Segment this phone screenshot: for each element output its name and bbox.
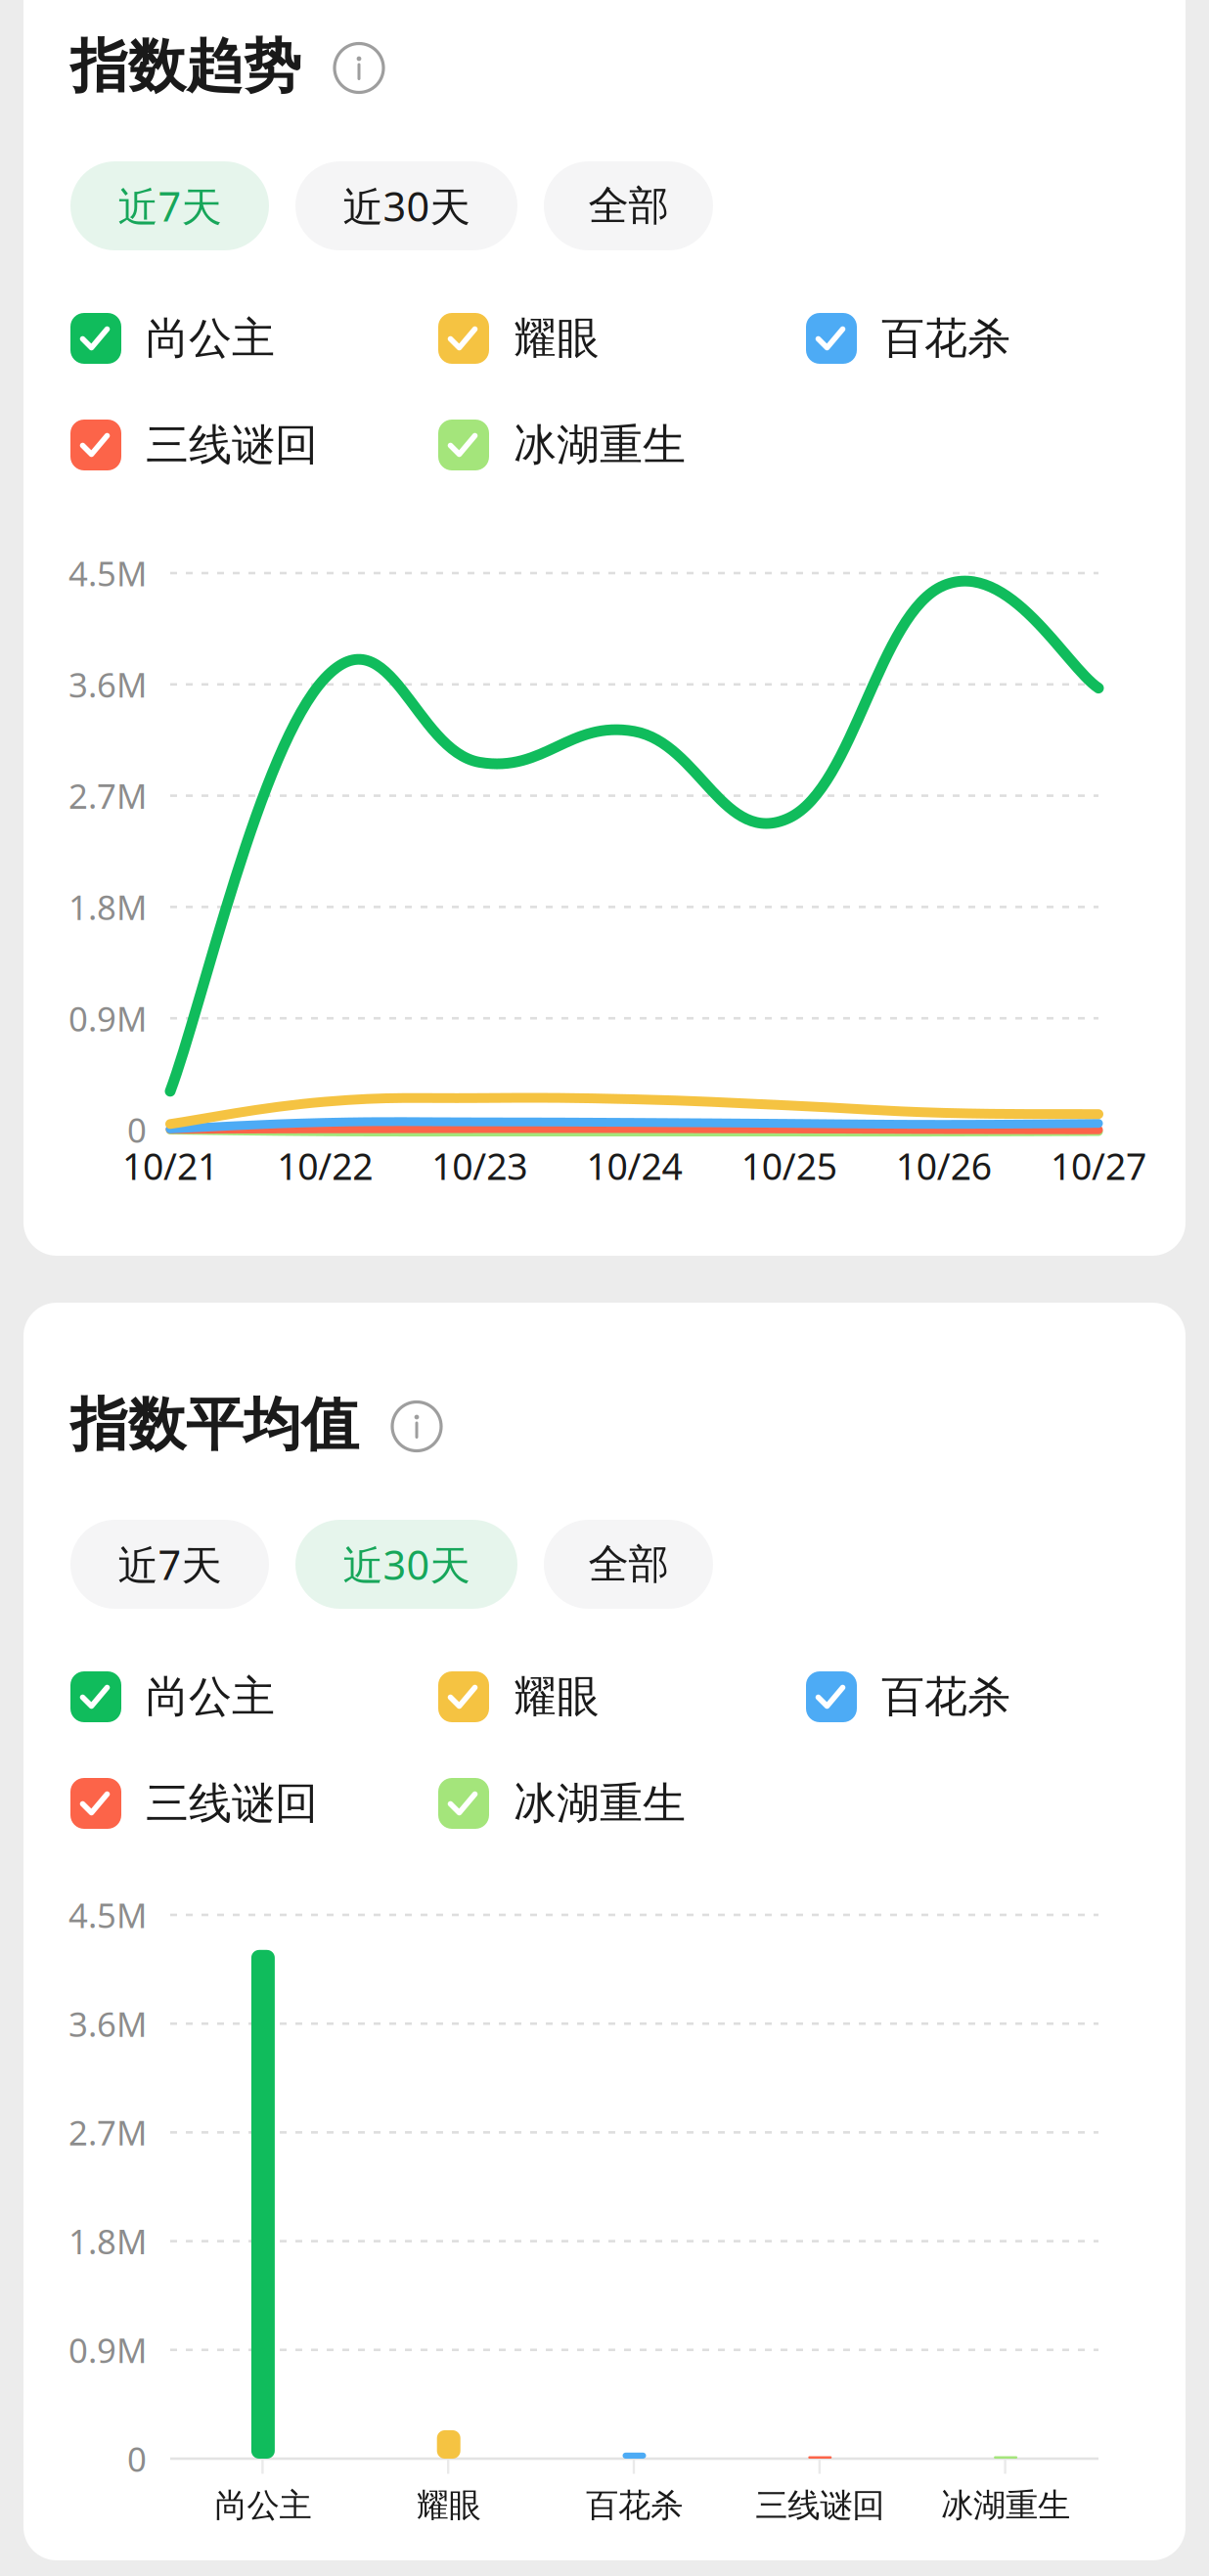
button[interactable]: 冰湖重生 — [438, 420, 806, 470]
staticText: 10/21 — [122, 1141, 218, 1190]
staticText: 三线谜回 — [146, 419, 318, 471]
button[interactable]: 近7天 — [70, 161, 269, 250]
staticText: 全部 — [588, 181, 669, 231]
button[interactable]: 全部 — [544, 161, 713, 250]
button[interactable]: 百花杀 — [806, 313, 1174, 364]
staticText: 0 — [127, 2436, 147, 2481]
staticText: 10/22 — [277, 1141, 373, 1190]
staticText: 三线谜回 — [146, 1777, 318, 1830]
button[interactable]: 近30天 — [295, 161, 517, 250]
staticText: 近30天 — [343, 1537, 470, 1591]
staticText: 4.5M — [68, 1892, 147, 1937]
staticText: 10/23 — [432, 1141, 528, 1190]
button[interactable]: 近30天 — [295, 1520, 517, 1609]
staticText: 近30天 — [343, 179, 470, 233]
staticText: 三线谜回 — [755, 2486, 885, 2526]
staticText: 百花杀 — [881, 312, 1010, 365]
button[interactable]: 三线谜回 — [70, 1778, 438, 1829]
staticText: 百花杀 — [881, 1670, 1010, 1723]
staticText: 百花杀 — [586, 2486, 683, 2526]
staticText: 冰湖重生 — [514, 1777, 686, 1830]
staticText: 0.9M — [68, 996, 147, 1041]
staticText: 指数趋势 — [70, 31, 301, 102]
staticText: 10/24 — [586, 1141, 682, 1190]
button[interactable]: 尚公主 — [70, 313, 438, 364]
staticText: 2.7M — [68, 773, 147, 818]
staticText: 1.8M — [68, 884, 147, 929]
staticText: 10/26 — [896, 1141, 992, 1190]
staticText: 近7天 — [118, 1537, 222, 1591]
button[interactable]: 三线谜回 — [70, 420, 438, 470]
button[interactable]: 耀眼 — [438, 1671, 806, 1722]
staticText: 0 — [127, 1107, 147, 1152]
staticText: 冰湖重生 — [514, 419, 686, 471]
staticText: 尚公主 — [146, 312, 275, 365]
button[interactable]: 近7天 — [70, 1520, 269, 1609]
staticText: 10/27 — [1051, 1141, 1146, 1190]
staticText: 耀眼 — [416, 2486, 481, 2526]
staticText: 2.7M — [68, 2110, 147, 2155]
staticText: 近7天 — [118, 179, 222, 233]
staticText: 3.6M — [68, 662, 147, 707]
staticText: 耀眼 — [514, 312, 600, 365]
button[interactable]: 尚公主 — [70, 1671, 438, 1722]
staticText: 耀眼 — [514, 1670, 600, 1723]
staticText: 4.5M — [68, 551, 147, 596]
staticText: 冰湖重生 — [941, 2486, 1070, 2526]
staticText: 尚公主 — [146, 1670, 275, 1723]
staticText: 0.9M — [68, 2327, 147, 2372]
button[interactable]: 百花杀 — [806, 1671, 1174, 1722]
button[interactable]: 冰湖重生 — [438, 1778, 806, 1829]
staticText: 指数平均值 — [70, 1390, 359, 1460]
staticText: 3.6M — [68, 2001, 147, 2046]
button[interactable]: 全部 — [544, 1520, 713, 1609]
staticText: 全部 — [588, 1539, 669, 1589]
button[interactable]: 说明 — [301, 41, 383, 92]
staticText: 10/25 — [741, 1141, 837, 1190]
staticText: 尚公主 — [215, 2486, 311, 2526]
staticText: 1.8M — [68, 2219, 147, 2264]
button[interactable]: 耀眼 — [438, 313, 806, 364]
button[interactable]: 说明 — [359, 1399, 441, 1451]
